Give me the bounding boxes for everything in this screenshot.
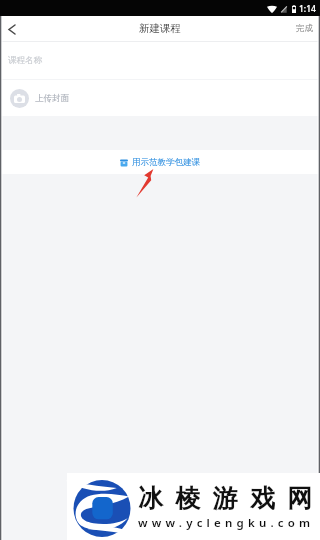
staticText: 上传封面 [35,93,69,104]
button[interactable]: 完成 [289,23,320,34]
staticText: 用示范教学包建课 [132,157,200,168]
staticText: 完成 [296,23,313,34]
button[interactable]: 课程名称 [0,42,320,79]
staticText: 新建课程 [139,22,181,35]
staticText: www.yclengku.com [138,515,315,531]
staticText: 课程名称 [8,55,42,66]
staticText: 1:14 [299,3,316,15]
button[interactable]: Back [0,17,24,41]
button[interactable]: 用示范教学包建课 [0,150,320,174]
button[interactable]: 上传封面 [0,80,320,116]
staticText: 冰棱游戏网 [138,483,320,514]
